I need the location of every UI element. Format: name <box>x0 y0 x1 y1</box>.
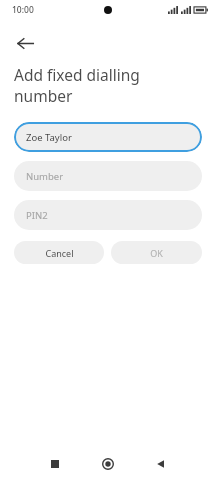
staticText: Number <box>26 170 64 183</box>
staticText: Cancel <box>45 247 74 259</box>
button[interactable]: Recent apps <box>38 448 72 480</box>
staticText: Add fixed dialling <box>14 64 140 85</box>
staticText: 10:00 <box>12 4 34 16</box>
button[interactable]: PIN2 <box>14 200 202 230</box>
staticText: OK <box>150 247 163 259</box>
staticText: PIN2 <box>26 209 48 222</box>
button[interactable]: Cancel <box>14 241 104 264</box>
button[interactable]: Back <box>144 448 178 480</box>
button[interactable]: OK <box>111 241 202 264</box>
button[interactable]: Home <box>91 448 125 480</box>
staticText: Zoe Taylor <box>26 131 72 144</box>
staticText: number <box>14 85 73 106</box>
button[interactable]: Number <box>14 161 202 191</box>
button[interactable]: Back <box>6 24 44 62</box>
button[interactable]: Zoe Taylor <box>14 122 202 152</box>
